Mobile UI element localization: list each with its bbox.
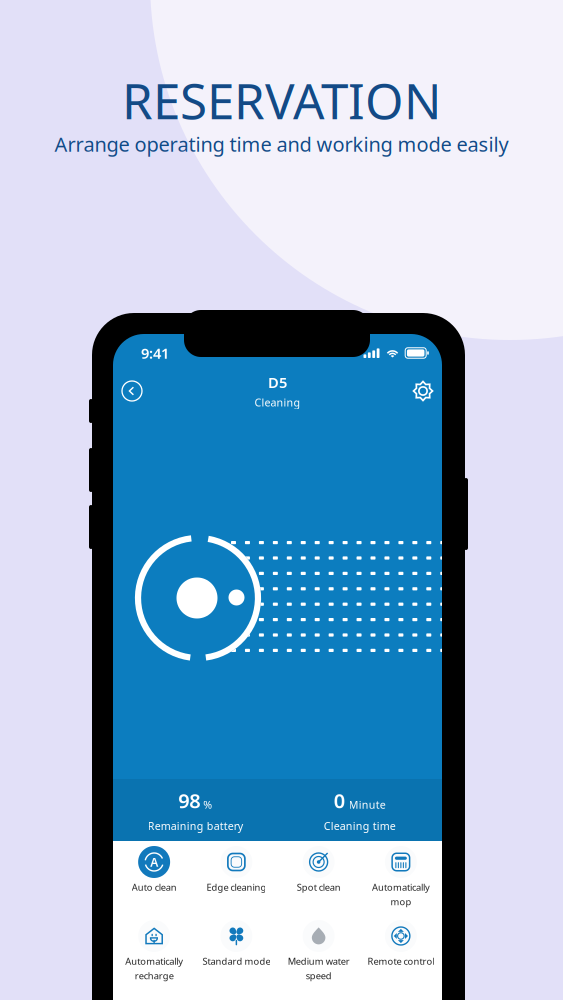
staticText: RESERVATION — [122, 67, 441, 133]
button[interactable]: Back — [115, 374, 149, 408]
staticText: D5 — [268, 373, 287, 392]
button[interactable]: Spot clean — [277, 846, 360, 920]
button[interactable]: Settings — [406, 374, 440, 408]
staticText: recharge — [135, 969, 174, 982]
staticText: mop — [390, 895, 411, 908]
button[interactable]: Edge cleaning — [195, 846, 277, 920]
staticText: Minute — [349, 797, 386, 812]
staticText: 9:41 — [141, 343, 169, 363]
staticText: Auto clean — [132, 881, 177, 893]
staticText: 0 — [334, 787, 345, 814]
button[interactable]: Automatically — [113, 920, 195, 994]
button[interactable]: Standard mode — [195, 920, 277, 994]
button[interactable]: A — [113, 846, 195, 920]
staticText: Medium water — [288, 955, 350, 967]
staticText: Arrange operating time and working mode … — [54, 131, 508, 157]
staticText: speed — [306, 969, 332, 982]
staticText: A — [150, 854, 158, 870]
button[interactable]: Medium water — [277, 920, 360, 994]
staticText: Automatically — [125, 955, 183, 967]
staticText: Cleaning — [254, 395, 300, 409]
staticText: Spot clean — [297, 881, 341, 893]
staticText: Edge cleaning — [206, 881, 266, 893]
staticText: Remaining battery — [148, 819, 243, 833]
staticText: Cleaning time — [324, 819, 396, 833]
staticText: Automatically — [372, 881, 430, 893]
button[interactable]: Automatically — [360, 846, 442, 920]
button[interactable]: Remote control — [360, 920, 442, 994]
staticText: Remote control — [367, 955, 434, 967]
staticText: % — [203, 797, 212, 812]
staticText: Standard mode — [202, 955, 270, 967]
staticText: 98 — [178, 787, 200, 814]
